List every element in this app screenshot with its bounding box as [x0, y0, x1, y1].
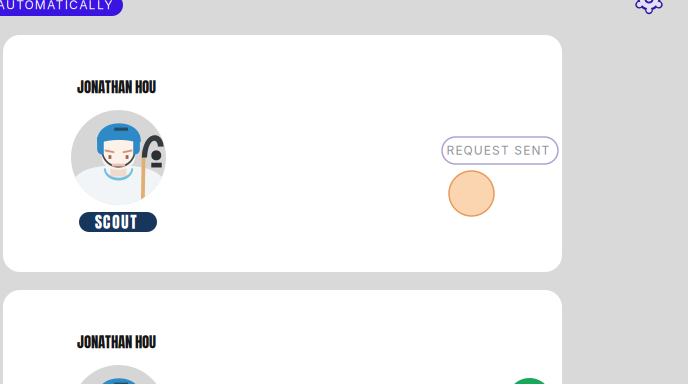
staticText: REQUEST SENT: [446, 143, 554, 158]
button[interactable]: Settings: [632, 0, 666, 16]
staticText: SCOUT: [95, 210, 141, 234]
staticText: JONATHAN HOU: [77, 76, 156, 98]
button[interactable]: SCOUT: [79, 212, 157, 232]
button[interactable]: REQUEST SENT: [442, 137, 558, 164]
staticText: JONATHAN HOU: [77, 331, 156, 353]
staticText: S AUTOMATICALLY: [0, 0, 112, 12]
